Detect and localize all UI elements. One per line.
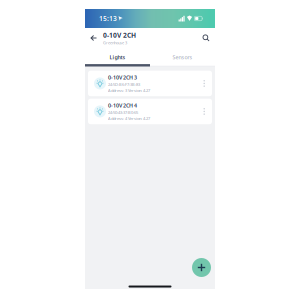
staticText: Sensors	[172, 54, 192, 61]
button[interactable]: Search	[199, 31, 213, 45]
button[interactable]: 0-10V 2CH 4	[88, 99, 212, 124]
staticText: 24:5D:B6:F7:3B:83	[108, 82, 140, 87]
button[interactable]: Back	[87, 31, 100, 45]
staticText: 15:13	[99, 14, 117, 23]
button[interactable]: Add device	[191, 257, 212, 278]
button[interactable]: Lights	[85, 48, 150, 66]
button[interactable]: 0-10V 2CH 3	[88, 71, 212, 96]
button[interactable]: Sensors	[150, 48, 215, 66]
staticText: Lights	[109, 54, 125, 61]
staticText: 0-10V 2CH 3	[108, 74, 137, 81]
staticText: 0-10V 2CH 4	[108, 102, 137, 109]
staticText: Greenhouse 3	[103, 40, 127, 45]
staticText: 24:50:43:37:B0:65	[108, 110, 138, 115]
staticText: Address: 3 Version: 4.27	[108, 88, 150, 93]
staticText: Address: 4 Version: 4.27	[108, 116, 150, 121]
staticText: 0-10V 2CH	[103, 31, 136, 39]
